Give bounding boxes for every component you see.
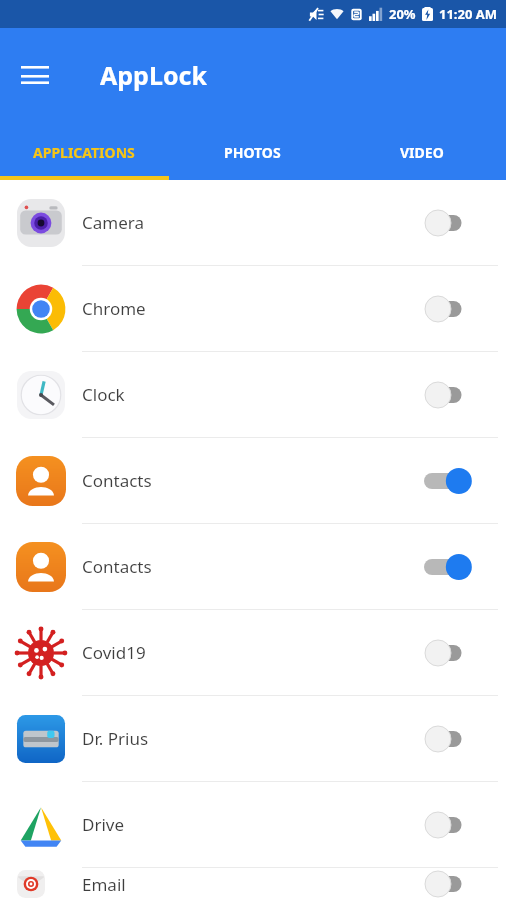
- button[interactable]: Lock toggle for Drive: [422, 808, 474, 842]
- button[interactable]: Lock toggle for Clock: [422, 378, 474, 412]
- button[interactable]: Clock: [0, 352, 506, 437]
- staticText: Email: [82, 873, 126, 896]
- staticText: Drive: [82, 813, 125, 836]
- button[interactable]: Lock toggle for Chrome: [422, 292, 474, 326]
- button[interactable]: Lock toggle for Camera: [422, 206, 474, 240]
- staticText: AppLock: [100, 58, 207, 92]
- staticText: Covid19: [82, 641, 146, 664]
- button[interactable]: Contacts: [0, 524, 506, 609]
- staticText: Clock: [82, 383, 125, 406]
- button[interactable]: Covid19: [0, 610, 506, 695]
- staticText: Chrome: [82, 297, 146, 320]
- button[interactable]: APPLICATIONS: [0, 136, 168, 168]
- staticText: Camera: [82, 211, 144, 234]
- button[interactable]: Lock toggle for Covid19: [422, 636, 474, 670]
- button[interactable]: Drive: [0, 782, 506, 867]
- button[interactable]: PHOTOS: [168, 136, 337, 168]
- staticText: APPLICATIONS: [33, 143, 135, 162]
- staticText: Contacts: [82, 555, 152, 578]
- button[interactable]: Chrome: [0, 266, 506, 351]
- button[interactable]: Open navigation drawer: [14, 54, 56, 96]
- staticText: VIDEO: [400, 143, 444, 162]
- button[interactable]: Camera: [0, 180, 506, 265]
- staticText: PHOTOS: [224, 143, 281, 162]
- button[interactable]: Email: [0, 868, 506, 900]
- button[interactable]: Lock toggle for Contacts: [422, 464, 474, 498]
- button[interactable]: VIDEO: [337, 136, 506, 168]
- staticText: 11:20 AM: [439, 5, 498, 23]
- button[interactable]: Contacts: [0, 438, 506, 523]
- staticText: Contacts: [82, 469, 152, 492]
- button[interactable]: Lock toggle for Dr. Prius: [422, 722, 474, 756]
- button[interactable]: Dr. Prius: [0, 696, 506, 781]
- staticText: 20%: [389, 5, 416, 23]
- button[interactable]: Lock toggle for Email: [422, 868, 474, 900]
- staticText: Dr. Prius: [82, 727, 149, 750]
- button[interactable]: Lock toggle for Contacts: [422, 550, 474, 584]
